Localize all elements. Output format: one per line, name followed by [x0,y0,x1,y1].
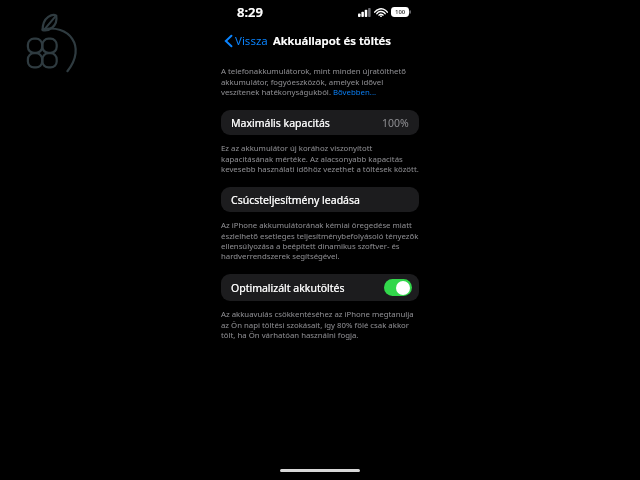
button[interactable]: Maximális kapacitás [221,110,419,135]
staticText: Ez az akkumulátor új korához viszonyítot… [221,143,419,175]
other: Optimalizált akkutöltés kapcsoló [384,279,412,296]
staticText: 100 [395,8,406,16]
button[interactable]: Csúcsteljesítmény leadása [221,187,419,212]
staticText: Maximális kapacitás [231,116,382,130]
staticText: Vissza [235,33,268,49]
button[interactable]: Optimalizált akkutöltés [221,274,419,301]
staticText: 8:29 [237,3,263,21]
staticText: Az iPhone akkumulátorának kémiai öregedé… [221,220,419,262]
staticText: A telefonakkumulátorok, mint minden újra… [221,66,419,98]
staticText: 100% [382,116,409,130]
button[interactable]: Vissza [223,31,270,51]
staticText: Optimalizált akkutöltés [231,281,384,295]
staticText: Akkuállapot és töltés [273,33,391,49]
staticText: Az akkuavulás csökkentéséhez az iPhone m… [221,309,419,341]
staticText: Csúcsteljesítmény leadása [231,193,409,207]
